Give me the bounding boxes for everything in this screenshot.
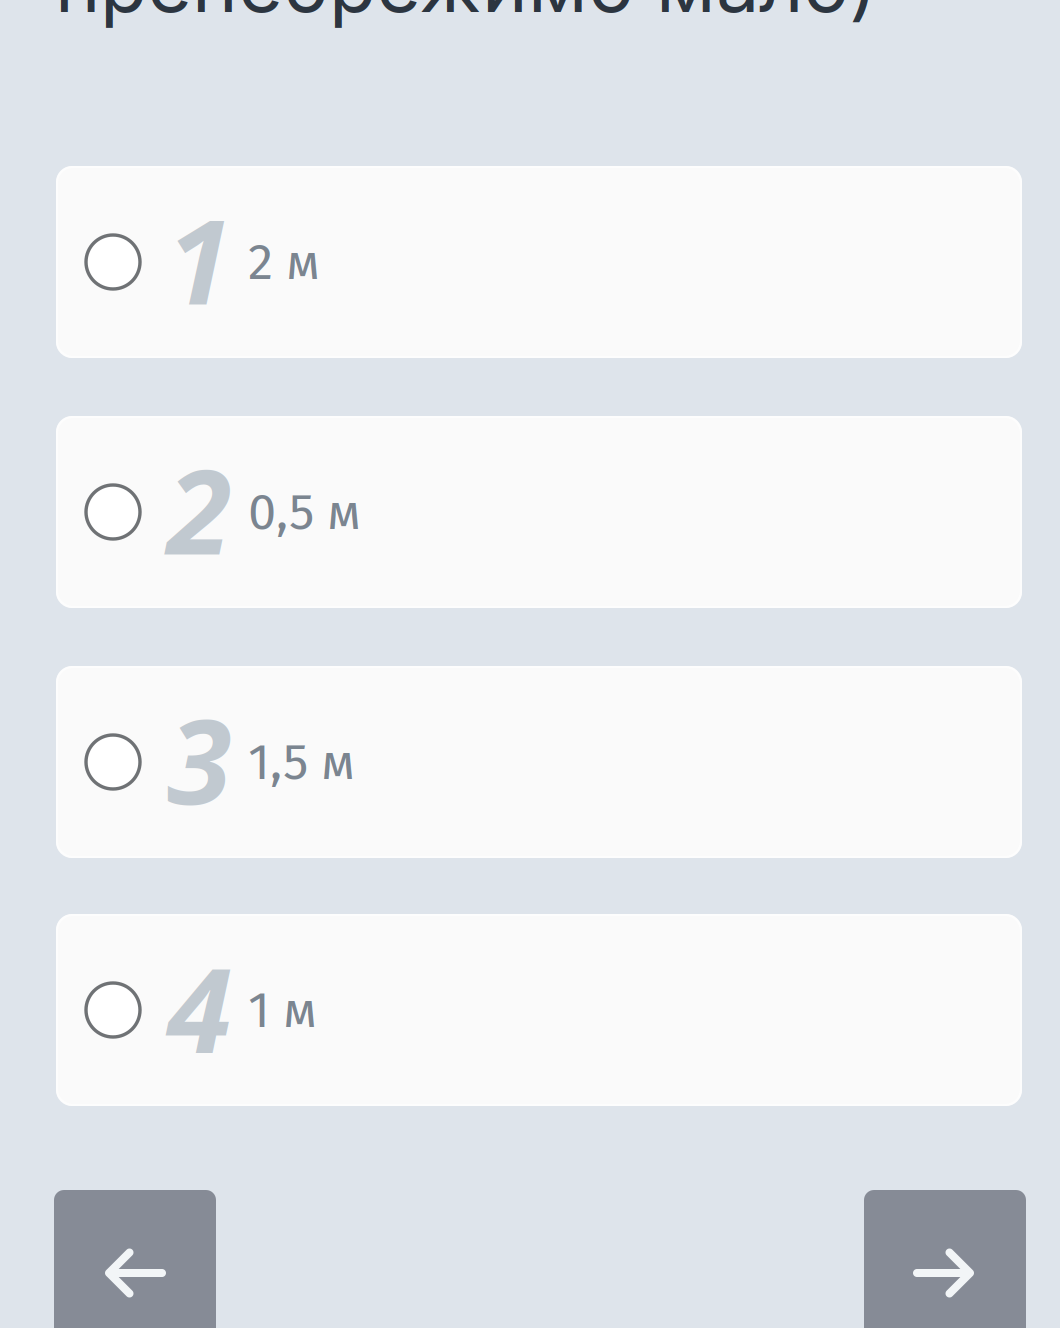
button[interactable]: 2 <box>56 416 1022 608</box>
staticText: 1 м <box>248 980 317 1040</box>
staticText: 1 <box>167 179 232 339</box>
button[interactable]: 4 <box>56 914 1022 1106</box>
staticText: 4 <box>167 927 232 1087</box>
staticText: 2 м <box>248 232 320 292</box>
button[interactable]: Previous question <box>54 1190 216 1328</box>
button[interactable]: 3 <box>56 666 1022 858</box>
staticText: пренебрежимо мало) <box>55 0 877 31</box>
staticText: 1,5 м <box>248 732 355 792</box>
staticText: 3 <box>167 679 232 839</box>
staticText: 0,5 м <box>248 482 361 542</box>
button[interactable]: 1 <box>56 166 1022 358</box>
staticText: 2 <box>167 429 232 589</box>
button[interactable]: Next question <box>864 1190 1026 1328</box>
